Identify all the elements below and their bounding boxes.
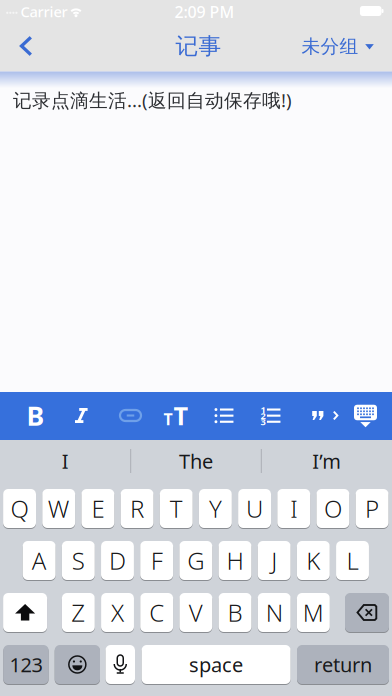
button[interactable]: I — [5, 441, 125, 481]
staticText: I’m — [312, 448, 341, 474]
button[interactable]: X — [101, 592, 134, 632]
staticText: W — [48, 493, 70, 524]
staticText: D — [109, 545, 126, 576]
staticText: Y — [209, 493, 222, 524]
button[interactable]: Back — [19, 36, 32, 56]
staticText: K — [306, 545, 320, 576]
button[interactable]: M — [297, 592, 330, 632]
staticText: E — [91, 493, 104, 524]
button[interactable]: P — [356, 488, 388, 528]
button[interactable]: return — [297, 644, 389, 684]
staticText: I — [290, 493, 297, 524]
button[interactable]: 123 — [3, 644, 49, 684]
button[interactable]: R — [121, 488, 153, 528]
button[interactable]: N — [258, 592, 291, 632]
button[interactable]: More formatting — [333, 411, 339, 420]
staticText: 2:09 PM — [174, 1, 234, 22]
staticText: V — [189, 597, 203, 628]
button[interactable]: K — [297, 540, 330, 580]
staticText: Carrier — [20, 2, 67, 21]
staticText: T — [170, 493, 183, 524]
button[interactable]: Z — [62, 592, 95, 632]
button[interactable]: 未分组 — [294, 23, 380, 69]
staticText: B — [227, 597, 242, 628]
button[interactable]: V — [179, 592, 212, 632]
button[interactable]: Shift — [3, 592, 47, 632]
staticText: 记录点滴生活...(返回自动保存哦!) — [13, 88, 292, 112]
staticText: space — [189, 651, 243, 678]
staticText: 123 — [9, 651, 42, 678]
staticText: N — [266, 597, 283, 628]
staticText: A — [32, 545, 47, 576]
button[interactable]: Delete — [345, 592, 389, 632]
staticText: 未分组 — [301, 35, 358, 58]
staticText: S — [72, 545, 85, 576]
staticText: 1 — [260, 403, 265, 416]
staticText: G — [187, 545, 204, 576]
button[interactable]: Dictation — [105, 644, 135, 684]
staticText: T — [173, 399, 188, 432]
button[interactable]: Quote — [306, 398, 330, 432]
button[interactable]: Bulleted list — [209, 398, 239, 432]
button[interactable]: Y — [199, 488, 232, 528]
staticText: R — [130, 493, 144, 524]
button[interactable]: S — [62, 540, 95, 580]
button[interactable]: Dismiss keyboard — [350, 399, 380, 433]
staticText: Q — [11, 493, 29, 524]
button[interactable]: C — [140, 592, 173, 632]
button[interactable]: I — [277, 488, 310, 528]
button[interactable]: H — [219, 540, 251, 580]
button[interactable]: Q — [3, 488, 36, 528]
button[interactable]: Italic — [66, 398, 96, 432]
button[interactable]: D — [101, 540, 134, 580]
staticText: B — [26, 398, 44, 433]
button[interactable]: Text size — [159, 398, 193, 432]
staticText: J — [271, 545, 277, 576]
staticText: C — [149, 597, 164, 628]
button[interactable]: Numbered list — [256, 398, 286, 432]
staticText: I — [62, 448, 69, 474]
staticText: L — [346, 545, 358, 576]
staticText: X — [111, 597, 124, 628]
button[interactable]: O — [316, 488, 349, 528]
button[interactable]: W — [42, 488, 75, 528]
staticText: F — [151, 545, 163, 576]
staticText: O — [324, 493, 342, 524]
button[interactable]: Insert link — [115, 398, 145, 432]
button[interactable]: Bold — [20, 398, 50, 432]
button[interactable]: A — [23, 540, 56, 580]
staticText: P — [365, 493, 379, 524]
staticText: M — [303, 597, 324, 628]
staticText: 2 — [260, 409, 265, 422]
button[interactable]: The — [136, 441, 256, 481]
button[interactable]: B — [219, 592, 251, 632]
button[interactable]: E — [81, 488, 114, 528]
button[interactable]: F — [140, 540, 173, 580]
button[interactable]: G — [179, 540, 212, 580]
button[interactable]: I’m — [267, 441, 387, 481]
button[interactable]: space — [142, 644, 291, 684]
button[interactable]: L — [336, 540, 369, 580]
staticText: return — [314, 651, 372, 678]
button[interactable]: Emoji — [55, 644, 100, 684]
button[interactable]: J — [258, 540, 291, 580]
staticText: Z — [71, 597, 85, 628]
staticText: 记事 — [175, 32, 221, 60]
staticText: H — [226, 545, 243, 576]
button[interactable]: T — [160, 488, 193, 528]
staticText: 3 — [260, 416, 265, 428]
button[interactable]: U — [238, 488, 271, 528]
staticText: T — [163, 408, 172, 430]
staticText: U — [246, 493, 263, 524]
staticText: The — [179, 448, 213, 474]
